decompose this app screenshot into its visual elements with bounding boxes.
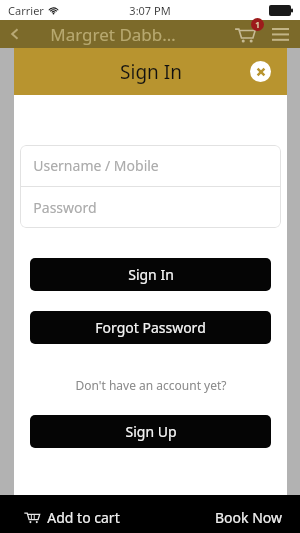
button[interactable]: Password xyxy=(20,187,281,228)
staticText: Forgot Password xyxy=(95,318,206,337)
staticText: Don't have an account yet? xyxy=(75,377,227,393)
staticText: Book Now xyxy=(215,508,282,527)
button[interactable]: Close xyxy=(250,61,271,82)
button[interactable]: Menu xyxy=(266,20,294,48)
button[interactable]: Back xyxy=(0,20,30,48)
staticText: Password xyxy=(33,198,97,217)
staticText: 3:07 PM xyxy=(129,3,171,18)
staticText: Username / Mobile xyxy=(33,156,159,175)
staticText: Sign In xyxy=(120,59,182,85)
button[interactable]: Book Now xyxy=(215,502,282,532)
staticText: Sign In xyxy=(128,265,174,284)
button[interactable]: Forgot Password xyxy=(30,311,271,344)
button[interactable]: Username / Mobile xyxy=(20,145,281,186)
button[interactable]: Sign In xyxy=(30,258,271,291)
staticText: Carrier xyxy=(8,3,44,18)
staticText: Add to cart xyxy=(47,508,120,527)
staticText: 1 xyxy=(255,19,260,30)
button[interactable]: Sign Up xyxy=(30,415,271,448)
staticText: Sign Up xyxy=(125,422,177,441)
button[interactable]: Cart xyxy=(228,20,262,48)
button[interactable]: Add to cart xyxy=(14,502,130,532)
staticText: Margret Dabb… xyxy=(50,23,176,46)
